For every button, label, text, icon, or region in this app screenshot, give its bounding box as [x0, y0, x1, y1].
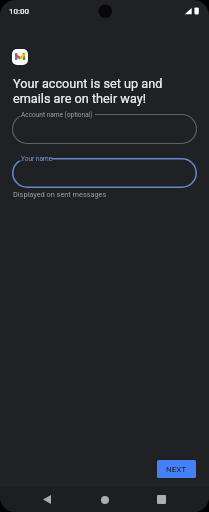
button[interactable]: Your name [12, 158, 197, 188]
staticText: Account name (optional) [21, 111, 93, 119]
button[interactable]: Recents [148, 487, 174, 512]
staticText: Your name [21, 155, 53, 163]
staticText: Displayed on sent messages [13, 190, 107, 199]
button[interactable]: Back [34, 487, 60, 512]
button[interactable]: Account name (optional) [12, 114, 197, 144]
staticText: Your account is set up and emails are on… [13, 76, 163, 106]
button[interactable]: NEXT [157, 460, 196, 478]
staticText: NEXT [166, 465, 187, 474]
staticText: 10:00 [9, 7, 30, 16]
button[interactable]: Home [92, 487, 118, 512]
